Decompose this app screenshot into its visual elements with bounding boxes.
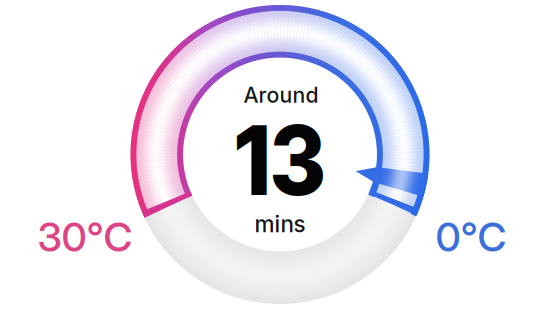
staticText: Around — [243, 82, 318, 108]
staticText: 0°C — [435, 213, 506, 261]
staticText: mins — [254, 210, 305, 238]
staticText: 13 — [228, 100, 332, 220]
staticText: 30°C — [37, 213, 132, 261]
